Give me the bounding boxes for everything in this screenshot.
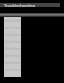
button[interactable]: Troubleshooting [0, 3, 60, 7]
button[interactable]: Item 4 text [4, 45, 21, 52]
staticText: Item 4 text [5, 47, 21, 51]
staticText: Item 6 text [5, 61, 21, 65]
button[interactable]: Item 1 text [4, 24, 21, 31]
staticText: Troubleshooting [4, 3, 35, 7]
staticText: Item 0 text [5, 19, 21, 23]
button[interactable]: Item 0 text [4, 17, 21, 24]
button[interactable]: Item 7 text [4, 66, 21, 73]
staticText: Item 2 text [5, 33, 21, 37]
staticText: Item 5 text [5, 54, 21, 58]
staticText: Item 7 text [5, 68, 21, 72]
button[interactable]: Item 5 text [4, 52, 21, 59]
button[interactable]: Item 2 text [4, 31, 21, 38]
button[interactable]: Item 6 text [4, 59, 21, 66]
staticText: Item 1 text [5, 26, 21, 30]
button[interactable]: Item 3 text [4, 38, 21, 45]
staticText: Item 3 text [5, 40, 21, 44]
